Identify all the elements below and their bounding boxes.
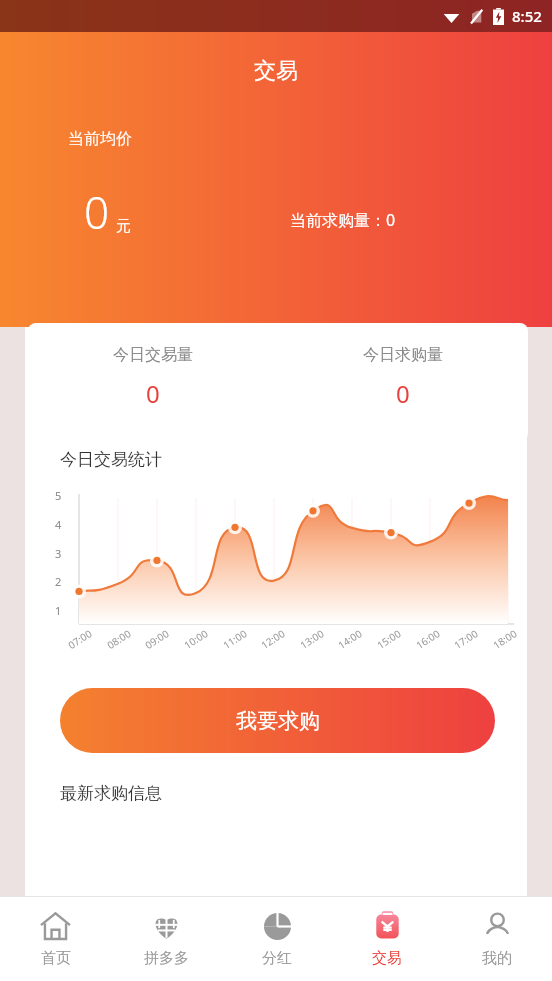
staticText: 12:00	[258, 626, 288, 652]
staticText: 今日交易统计	[60, 449, 162, 470]
staticText: 08:00	[104, 626, 134, 652]
staticText: 16:00	[413, 626, 443, 652]
button[interactable]: 首页	[0, 897, 111, 981]
staticText: 0	[84, 182, 110, 242]
button[interactable]: 今日交易量	[28, 323, 528, 441]
staticText: 当前均价	[68, 129, 132, 149]
button[interactable]: 我的	[442, 897, 552, 981]
staticText: 最新求购信息	[60, 783, 162, 804]
staticText: 09:00	[142, 626, 172, 652]
staticText: 3	[55, 546, 62, 561]
staticText: 17:00	[451, 626, 481, 652]
staticText: 交易	[372, 949, 402, 968]
button[interactable]: 我要求购	[60, 688, 495, 753]
staticText: 07:00	[65, 626, 95, 652]
staticText: 2	[55, 574, 62, 589]
staticText: 分红	[262, 949, 292, 968]
staticText: 4	[55, 517, 62, 532]
staticText: 交易	[254, 57, 298, 85]
button[interactable]: 拼多多	[111, 897, 222, 981]
button[interactable]: 交易	[332, 897, 442, 981]
staticText: 15:00	[374, 626, 404, 652]
staticText: 5	[55, 488, 62, 503]
staticText: 11:00	[220, 626, 250, 652]
staticText: 0	[146, 377, 160, 410]
staticText: 0	[396, 377, 410, 410]
staticText: 13:00	[297, 626, 327, 652]
staticText: 当前求购量：0	[290, 209, 396, 231]
staticText: 首页	[41, 949, 71, 968]
staticText: 我要求购	[236, 708, 320, 734]
staticText: 18:00	[490, 626, 520, 652]
staticText: 今日求购量	[363, 345, 443, 365]
staticText: 今日交易量	[113, 345, 193, 365]
staticText: 我的	[482, 949, 512, 968]
staticText: 1	[55, 603, 62, 618]
staticText: 8:52	[512, 6, 542, 26]
button[interactable]: 分红	[222, 897, 332, 981]
staticText: 拼多多	[144, 949, 189, 968]
staticText: 14:00	[335, 626, 365, 652]
staticText: 10:00	[181, 626, 211, 652]
staticText: 元	[116, 217, 131, 236]
